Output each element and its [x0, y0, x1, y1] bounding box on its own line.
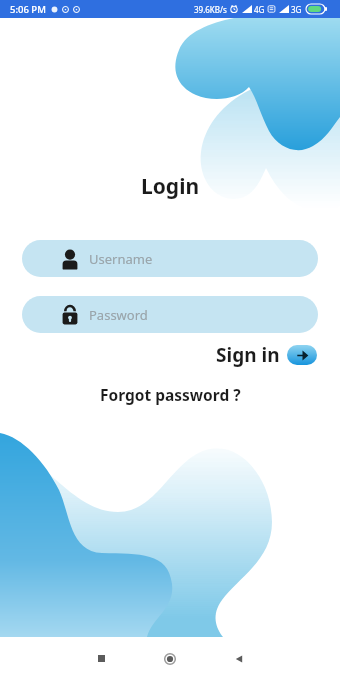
staticText: 5:06 PM — [10, 3, 46, 16]
staticText: Password — [89, 306, 148, 324]
staticText: 39.6KB/s — [194, 4, 227, 15]
staticText: 3G — [291, 4, 302, 15]
button[interactable]: Forgot password ? — [100, 384, 241, 405]
button[interactable]: Password — [22, 296, 318, 333]
button[interactable]: Username — [22, 240, 318, 277]
staticText: 4G — [254, 4, 265, 15]
staticText: Sign in — [216, 342, 280, 368]
button[interactable]: Sign in — [216, 342, 317, 368]
staticText: Username — [89, 250, 153, 268]
button[interactable]: Recent apps — [72, 637, 130, 680]
button[interactable]: Home — [141, 637, 199, 680]
button[interactable]: Back — [210, 637, 268, 680]
staticText: Login — [141, 172, 200, 201]
